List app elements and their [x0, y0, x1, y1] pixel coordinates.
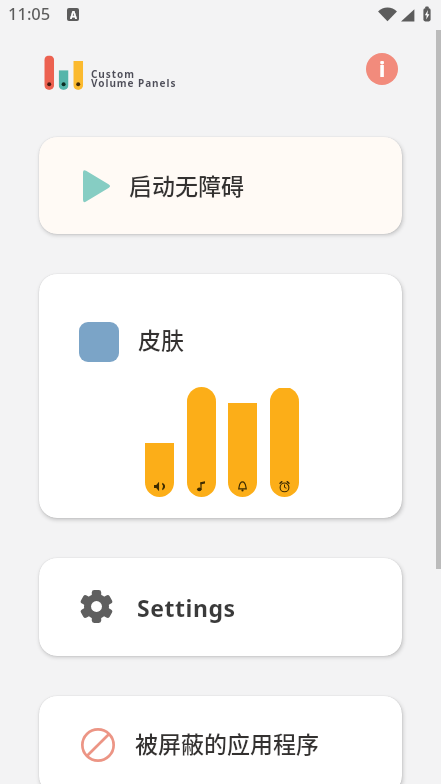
staticText: i	[379, 55, 386, 84]
button[interactable]: Volume slider 1	[145, 387, 174, 497]
staticText: A	[70, 8, 77, 21]
button[interactable]: Volume slider 2	[187, 387, 216, 497]
staticText: Settings	[137, 592, 236, 623]
staticText: 被屏蔽的应用程序	[135, 726, 319, 759]
staticText: 11:05	[8, 2, 51, 24]
staticText: 皮肤	[138, 322, 184, 355]
button[interactable]: Info	[366, 53, 398, 85]
staticText: 启动无障碍	[129, 168, 244, 201]
staticText: Custom Volume Panels	[91, 67, 177, 90]
button[interactable]: Settings	[39, 558, 402, 656]
button[interactable]: Volume slider 4	[270, 387, 299, 497]
button[interactable]: 皮肤	[39, 274, 402, 518]
button[interactable]: 被屏蔽的应用程序	[39, 696, 402, 784]
button[interactable]: 启动无障碍	[39, 137, 402, 234]
button[interactable]: Volume slider 3	[228, 387, 257, 497]
